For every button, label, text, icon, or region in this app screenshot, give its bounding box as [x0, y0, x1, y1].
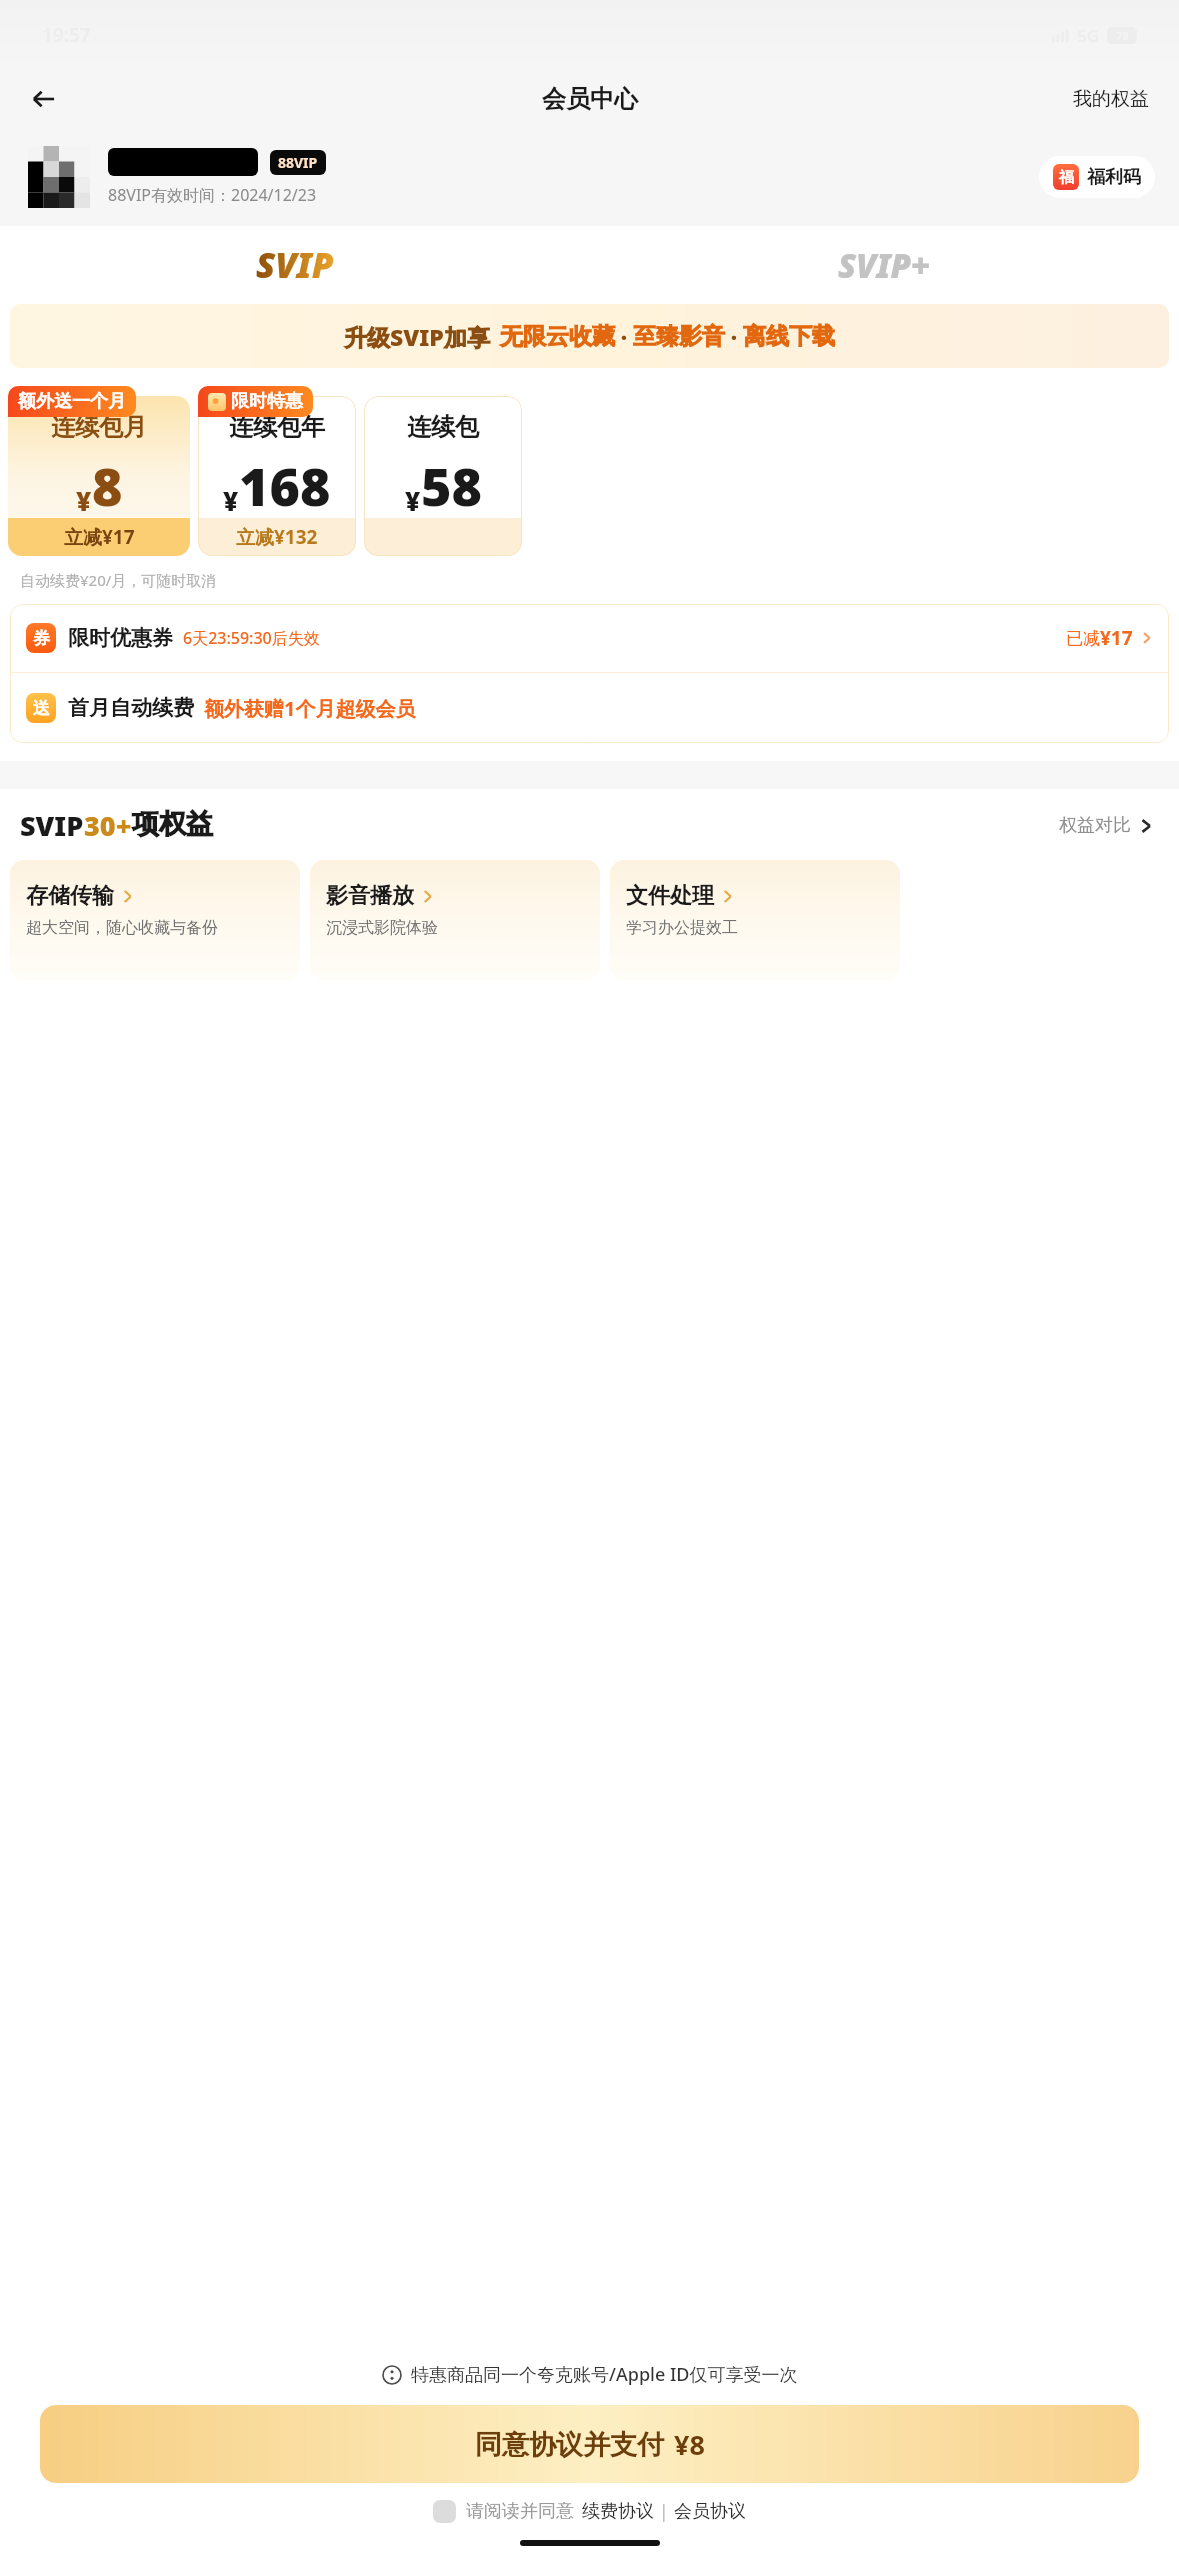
button[interactable]: 文件处理 [610, 860, 900, 980]
button[interactable]: 存储传输 [10, 860, 300, 980]
button[interactable]: 我的权益 [1067, 81, 1155, 117]
button[interactable]: 同意协议并支付 [40, 2405, 1139, 2483]
button[interactable]: 续费协议 [582, 2500, 654, 2523]
staticText: 立减¥132 [236, 524, 318, 550]
button[interactable]: 升级SVIP加享 [10, 304, 1169, 368]
staticText: ¥ [223, 483, 239, 518]
button[interactable]: 连续包月 [8, 396, 190, 556]
staticText: ¥17 [1100, 625, 1133, 651]
staticText: | [654, 2499, 674, 2524]
staticText: · [615, 322, 633, 352]
staticText: SVIP+ [838, 243, 931, 288]
staticText: 存储传输 [26, 882, 114, 910]
button[interactable]: 券 [10, 604, 1169, 672]
staticText: 超大空间，随心收藏与备份 [26, 918, 218, 938]
staticText: 特惠商品同一个夸克账号/Apple ID仅可享受一次 [411, 2362, 798, 2387]
staticText: 送 [33, 698, 50, 719]
button[interactable]: SVIP [0, 226, 589, 304]
button[interactable]: 连续包年 [198, 396, 356, 556]
staticText: SVIP [256, 241, 334, 289]
staticText: ¥8 [674, 2426, 705, 2463]
staticText: 请阅读并同意 [466, 2500, 574, 2523]
button[interactable]: SVIP+ [589, 226, 1179, 304]
staticText: 福 [1059, 168, 1074, 187]
button[interactable]: 送 [10, 673, 1169, 743]
staticText: ¥ [405, 483, 421, 518]
staticText: 会员中心 [542, 84, 638, 114]
staticText: 至臻影音 [633, 322, 725, 351]
staticText: 已减 [1066, 628, 1100, 649]
staticText: 连续包月 [51, 412, 147, 442]
staticText: 限时优惠券 [68, 625, 173, 651]
staticText: 连续包年 [229, 412, 325, 442]
staticText: 连续包 [407, 412, 479, 442]
staticText: 权益对比 [1059, 814, 1131, 837]
staticText: · [725, 322, 743, 352]
staticText: 88VIP有效时间：2024/12/23 [108, 184, 317, 206]
staticText: 学习办公提效工 [626, 918, 738, 938]
staticText: 立减¥17 [64, 524, 135, 550]
staticText: 额外获赠1个月超级会员 [204, 695, 416, 722]
staticText: 沉浸式影院体验 [326, 918, 438, 938]
staticText: 影音播放 [326, 882, 414, 910]
staticText: 项权益 [132, 807, 213, 841]
staticText: 文件处理 [626, 882, 714, 910]
staticText: 168 [239, 450, 331, 518]
staticText: SVIP [20, 807, 84, 844]
staticText: ¥ [76, 483, 92, 518]
staticText: 8 [92, 450, 123, 518]
staticText: 同意协议并支付 [475, 2428, 664, 2462]
staticText: 自动续费¥20/月，可随时取消 [20, 570, 217, 590]
button[interactable]: 影音播放 [310, 860, 600, 980]
button[interactable]: 权益对比 [1053, 808, 1159, 843]
staticText: 无限云收藏 [500, 322, 615, 351]
staticText: 券 [33, 628, 50, 649]
staticText: 福利码 [1087, 166, 1141, 189]
button[interactable]: Agree checkbox [433, 2500, 456, 2523]
staticText: 限时特惠 [231, 390, 303, 413]
button[interactable]: 福 [1039, 156, 1155, 198]
staticText: 额外送一个月 [18, 390, 126, 413]
staticText: 首月自动续费 [68, 695, 194, 721]
staticText: 6天23:59:30后失效 [183, 627, 320, 649]
button[interactable]: 会员协议 [674, 2500, 746, 2523]
button[interactable]: 连续包 [364, 396, 522, 556]
staticText: 30+ [84, 807, 132, 844]
staticText: 58 [421, 450, 482, 518]
staticText: 升级SVIP加享 [344, 321, 490, 352]
staticText: 离线下载 [743, 322, 835, 351]
staticText: 88VIP [278, 153, 318, 172]
button[interactable]: Back [22, 77, 66, 121]
